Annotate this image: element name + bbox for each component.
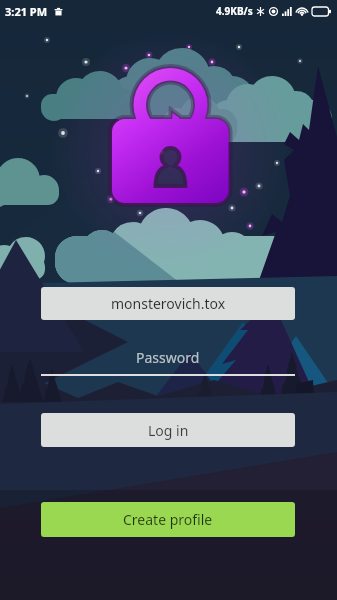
staticText: 3:21 PM xyxy=(5,4,48,19)
staticText: Password xyxy=(136,348,200,367)
staticText: monsterovich.tox xyxy=(111,294,226,313)
staticText: Log in xyxy=(148,421,189,440)
staticText: Create profile xyxy=(123,510,213,529)
button[interactable]: Log in xyxy=(41,413,295,447)
button[interactable]: monsterovich.tox xyxy=(41,287,295,320)
staticText: 4.9KB/s xyxy=(216,4,253,18)
button[interactable]: Create profile xyxy=(41,502,295,537)
button[interactable]: Password xyxy=(41,341,295,374)
